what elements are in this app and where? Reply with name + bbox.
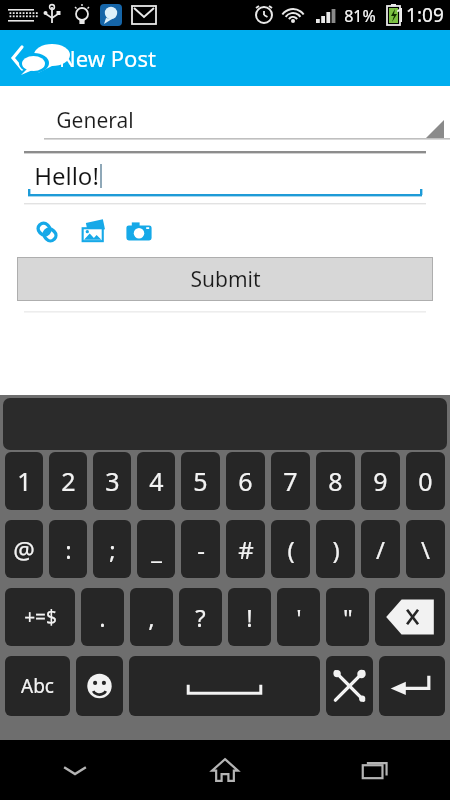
button[interactable]: 5 (181, 452, 220, 510)
staticText: 9 (373, 464, 388, 498)
staticText: ! (246, 601, 253, 634)
staticText: : (65, 533, 72, 566)
staticText: . (99, 601, 106, 634)
button[interactable]: Attach link (24, 209, 70, 255)
staticText: Abc (21, 673, 54, 699)
staticText: 2 (61, 464, 76, 498)
button[interactable]: 6 (226, 452, 265, 510)
staticText: " (343, 601, 353, 634)
button[interactable]: Hello! (0, 155, 450, 199)
button[interactable]: 7 (271, 452, 310, 510)
button[interactable]: Hide keyboard (0, 740, 150, 800)
button[interactable]: 1 (5, 452, 43, 510)
button[interactable]: / (361, 520, 400, 578)
button[interactable]: 0 (406, 452, 445, 510)
staticText: # (238, 533, 254, 566)
button[interactable]: +=$ (5, 588, 75, 646)
button[interactable]: Home (150, 740, 300, 800)
staticText: 11:09 (395, 2, 444, 28)
staticText: ; (109, 533, 116, 566)
button[interactable]: - (181, 520, 220, 578)
staticText: General (56, 106, 134, 135)
staticText: , (148, 601, 155, 634)
button[interactable]: 4 (137, 452, 175, 510)
staticText: ? (195, 601, 206, 634)
button[interactable]: ! (228, 588, 271, 646)
button[interactable]: Take photo with camera (116, 209, 162, 255)
staticText: / (376, 533, 385, 566)
button[interactable]: " (326, 588, 369, 646)
button[interactable]: General (0, 100, 450, 144)
staticText: Hello! (34, 159, 99, 192)
button[interactable]: Enter (379, 656, 445, 716)
staticText: ) (332, 533, 340, 566)
button[interactable]: 3 (93, 452, 131, 510)
staticText: - (197, 533, 205, 566)
staticText: New Post (59, 43, 156, 73)
button[interactable]: Keyboard settings (326, 656, 373, 716)
button[interactable]: . (81, 588, 124, 646)
button[interactable]: @ (5, 520, 43, 578)
staticText: ' (296, 601, 302, 634)
button[interactable]: Abc (5, 656, 70, 716)
button[interactable]: , (130, 588, 173, 646)
button[interactable]: New Post, navigate up (0, 30, 450, 86)
button[interactable]: Space (129, 656, 320, 716)
button[interactable]: ) (316, 520, 355, 578)
staticText: 5 (193, 464, 208, 498)
button[interactable]: Backspace (375, 588, 445, 646)
staticText: ( (287, 533, 295, 566)
button[interactable]: Submit (18, 258, 432, 300)
button[interactable]: # (226, 520, 265, 578)
staticText: 7 (283, 464, 298, 498)
button[interactable]: \ (406, 520, 445, 578)
staticText: 6 (238, 464, 253, 498)
staticText: Submit (190, 265, 261, 294)
staticText: _ (151, 533, 162, 566)
button[interactable]: 9 (361, 452, 400, 510)
button[interactable]: Attach image from gallery (70, 209, 116, 255)
button[interactable]: Emoji (76, 656, 123, 716)
staticText: 3 (105, 464, 120, 498)
button[interactable]: 8 (316, 452, 355, 510)
button[interactable]: ' (277, 588, 320, 646)
staticText: +=$ (24, 604, 57, 630)
button[interactable]: ? (179, 588, 222, 646)
staticText: 8 (328, 464, 343, 498)
button[interactable]: Recent apps (300, 740, 450, 800)
staticText: 4 (149, 464, 164, 498)
button[interactable]: ; (93, 520, 131, 578)
button[interactable]: ( (271, 520, 310, 578)
button[interactable]: _ (137, 520, 175, 578)
staticText: 81% (344, 5, 376, 27)
staticText: @ (13, 533, 35, 566)
button[interactable]: 2 (49, 452, 87, 510)
staticText: \ (421, 533, 430, 566)
staticText: 0 (418, 464, 433, 498)
button[interactable]: : (49, 520, 87, 578)
staticText: 1 (17, 464, 32, 498)
